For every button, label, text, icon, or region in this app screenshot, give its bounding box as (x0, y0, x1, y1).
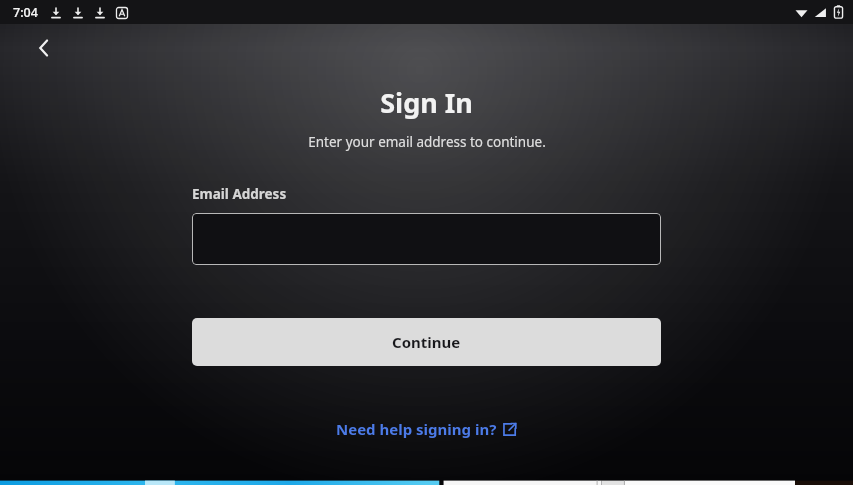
button[interactable]: Need help signing in? (330, 415, 523, 443)
staticText: Email Address (192, 185, 287, 203)
staticText: Sign In (380, 84, 473, 121)
staticText: Enter your email address to continue. (308, 133, 546, 151)
button[interactable]: Email Address input (192, 213, 661, 265)
button[interactable]: Back (22, 26, 66, 70)
button[interactable]: Continue (192, 318, 661, 366)
staticText: Need help signing in? (336, 419, 497, 439)
staticText: 7:04 (13, 4, 38, 21)
staticText: Continue (392, 332, 461, 352)
